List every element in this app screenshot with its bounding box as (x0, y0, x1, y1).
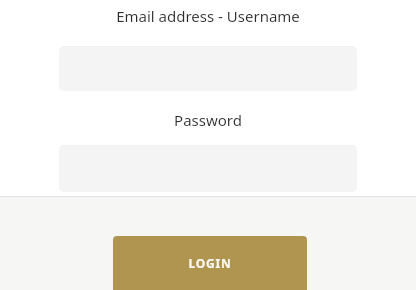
staticText: Password (174, 110, 242, 130)
staticText: Email address - Username (116, 6, 300, 26)
button[interactable]: LOGIN (113, 236, 307, 290)
staticText: LOGIN (188, 255, 232, 271)
